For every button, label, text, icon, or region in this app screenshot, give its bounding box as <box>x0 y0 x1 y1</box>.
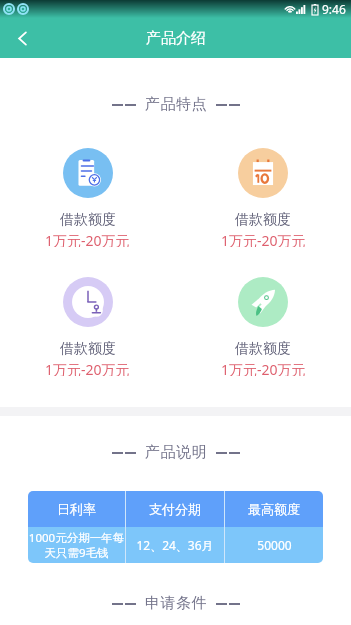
staticText: 9:46 <box>322 1 346 17</box>
staticText: 产品介绍 <box>146 29 206 48</box>
staticText: 50000 <box>257 537 292 553</box>
staticText: 最高额度 <box>248 501 300 517</box>
staticText: 1万元-20万元 <box>221 360 306 376</box>
staticText: 借款额度 <box>60 340 116 356</box>
staticText: 产品说明 <box>145 443 208 462</box>
staticText: 申请条件 <box>145 594 208 613</box>
staticText: 日利率 <box>57 501 96 517</box>
button[interactable]: Back <box>4 20 40 56</box>
staticText: 1万元-20万元 <box>45 231 130 247</box>
staticText: 12、24、36月 <box>136 537 214 553</box>
staticText: 产品特点 <box>145 95 208 114</box>
staticText: 1万元-20万元 <box>221 231 306 247</box>
staticText: 借款额度 <box>235 340 291 356</box>
staticText: 支付分期 <box>149 501 201 517</box>
staticText: 1万元-20万元 <box>45 360 130 376</box>
button[interactable]: 借款额度 <box>0 277 175 376</box>
staticText: 借款额度 <box>235 211 291 227</box>
staticText: 1000元分期一年每天只需9毛钱 <box>28 530 125 560</box>
staticText: 借款额度 <box>60 211 116 227</box>
button[interactable]: 借款额度 <box>0 148 175 247</box>
button[interactable]: 借款额度 <box>175 277 351 376</box>
button[interactable]: 借款额度 <box>175 148 351 247</box>
